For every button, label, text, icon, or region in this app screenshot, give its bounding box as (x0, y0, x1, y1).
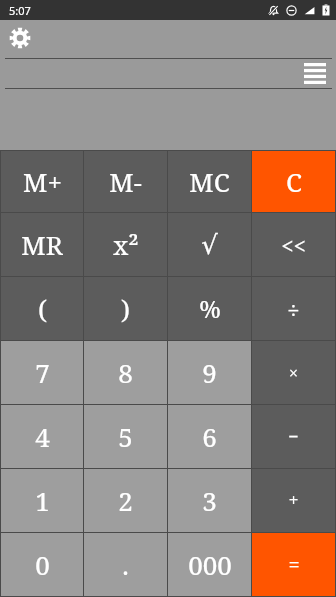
button[interactable]: × (252, 341, 335, 404)
button[interactable]: 2 (84, 469, 167, 532)
staticText: MC (189, 164, 230, 199)
staticText: 000 (188, 547, 232, 582)
staticText: 2 (118, 483, 133, 518)
button[interactable]: − (252, 405, 335, 468)
button[interactable]: ÷ (252, 277, 335, 340)
button[interactable]: 9 (168, 341, 251, 404)
button[interactable]: M+ (1, 151, 83, 212)
button[interactable]: 7 (1, 341, 83, 404)
button[interactable]: % (168, 277, 251, 340)
staticText: 9 (202, 355, 217, 390)
button[interactable]: = (252, 533, 335, 596)
button[interactable]: 1 (1, 469, 83, 532)
staticText: ( (38, 291, 47, 326)
staticText: . (122, 547, 129, 582)
button[interactable]: << (252, 213, 335, 276)
button[interactable]: x² (84, 213, 167, 276)
button[interactable]: . (84, 533, 167, 596)
staticText: MR (21, 227, 63, 262)
staticText: 5:07 (9, 3, 31, 18)
staticText: C (286, 164, 302, 199)
staticText: ÷ (287, 294, 300, 324)
staticText: √ (201, 230, 218, 260)
button[interactable]: M- (84, 151, 167, 212)
button[interactable]: MC (168, 151, 251, 212)
staticText: << (281, 230, 306, 260)
button[interactable]: + (252, 469, 335, 532)
button[interactable]: History (302, 60, 328, 86)
staticText: − (288, 424, 299, 449)
staticText: M+ (23, 164, 62, 199)
button[interactable]: MR (1, 213, 83, 276)
staticText: 8 (118, 355, 133, 390)
button[interactable]: ) (84, 277, 167, 340)
staticText: 3 (202, 483, 217, 518)
staticText: x² (113, 227, 139, 262)
button[interactable]: 5 (84, 405, 167, 468)
staticText: 5 (118, 419, 133, 454)
staticText: 7 (35, 355, 50, 390)
staticText: = (288, 551, 300, 578)
button[interactable]: 000 (168, 533, 251, 596)
button[interactable]: 6 (168, 405, 251, 468)
staticText: M- (109, 164, 142, 199)
staticText: 1 (35, 483, 50, 518)
staticText: % (199, 292, 221, 325)
button[interactable]: 3 (168, 469, 251, 532)
staticText: + (288, 488, 299, 513)
button[interactable]: √ (168, 213, 251, 276)
button[interactable]: 8 (84, 341, 167, 404)
staticText: 4 (35, 419, 50, 454)
button[interactable]: 4 (1, 405, 83, 468)
staticText: 0 (35, 547, 50, 582)
button[interactable]: C (252, 151, 335, 212)
button[interactable]: ( (1, 277, 83, 340)
staticText: 6 (202, 419, 217, 454)
staticText: × (289, 362, 298, 384)
button[interactable]: 0 (1, 533, 83, 596)
button[interactable]: Settings (7, 25, 33, 51)
staticText: ) (121, 291, 130, 326)
